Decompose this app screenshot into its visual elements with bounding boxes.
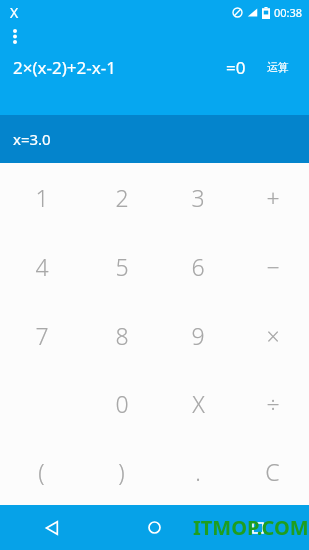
staticText: 3 <box>191 182 205 213</box>
staticText: 2×(x-2)+2-x-1 <box>13 56 116 79</box>
button[interactable]: Recent apps <box>206 505 309 550</box>
button[interactable]: ) <box>83 437 160 505</box>
button[interactable]: 7 <box>0 301 83 369</box>
button[interactable]: ÷ <box>236 369 309 437</box>
staticText: C <box>265 456 280 487</box>
button[interactable]: More options <box>3 24 27 48</box>
staticText: . <box>195 456 201 487</box>
button[interactable]: Home <box>103 505 206 550</box>
staticText: X <box>10 3 19 22</box>
button[interactable]: X <box>160 369 236 437</box>
staticText: ( <box>38 456 45 487</box>
staticText: X <box>192 388 205 419</box>
staticText: x=3.0 <box>13 129 51 149</box>
staticText: 5 <box>115 251 129 282</box>
staticText: 9 <box>191 320 205 351</box>
button[interactable]: 2 <box>83 163 160 232</box>
button[interactable]: 0 <box>83 369 160 437</box>
button[interactable]: × <box>236 301 309 369</box>
button[interactable]: + <box>236 163 309 232</box>
staticText: 4 <box>35 251 49 282</box>
staticText: 6 <box>191 251 205 282</box>
button[interactable]: 6 <box>160 232 236 301</box>
button[interactable]: Back <box>0 505 103 550</box>
button[interactable]: − <box>236 232 309 301</box>
staticText: + <box>266 182 280 213</box>
button[interactable]: 运算 <box>265 58 291 76</box>
button[interactable]: 5 <box>83 232 160 301</box>
staticText: 8 <box>115 320 129 351</box>
button[interactable]: 9 <box>160 301 236 369</box>
button[interactable]: ( <box>0 437 83 505</box>
staticText: 0 <box>115 388 129 419</box>
staticText: 00:38 <box>274 5 303 20</box>
staticText: ITMOP.COM <box>193 514 309 541</box>
button[interactable]: 4 <box>0 232 83 301</box>
staticText: 7 <box>35 320 49 351</box>
button[interactable]: 3 <box>160 163 236 232</box>
button[interactable]: 8 <box>83 301 160 369</box>
staticText: 1 <box>35 182 49 213</box>
staticText: =0 <box>226 56 246 79</box>
button[interactable]: 1 <box>0 163 83 232</box>
staticText: ) <box>118 456 125 487</box>
staticText: × <box>266 320 280 351</box>
staticText: − <box>266 251 280 282</box>
staticText: 运算 <box>267 60 289 74</box>
button[interactable]: C <box>236 437 309 505</box>
staticText: 2 <box>115 182 129 213</box>
staticText: ÷ <box>266 388 280 419</box>
